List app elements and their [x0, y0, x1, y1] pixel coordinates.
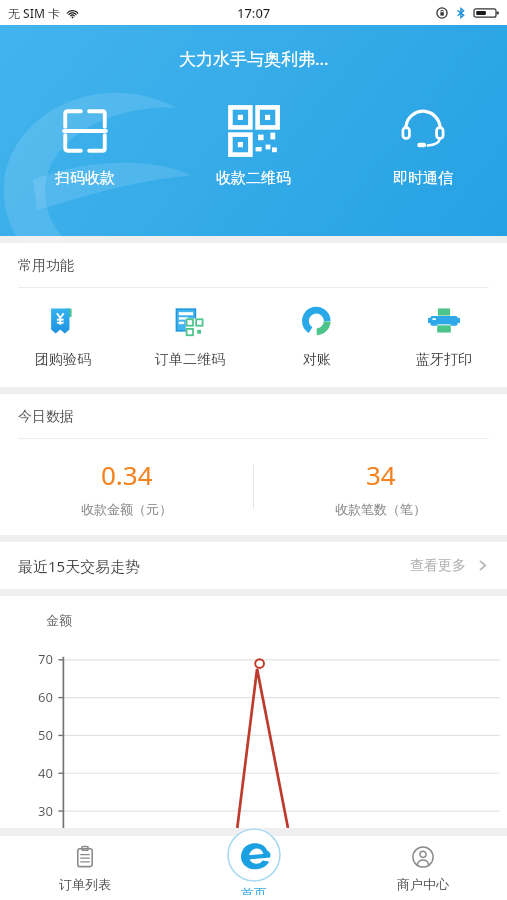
button[interactable]: 商户中心 — [338, 836, 507, 900]
staticText: 首页 — [241, 885, 267, 895]
staticText: 金额 — [46, 612, 72, 628]
button[interactable]: 团购验码 — [0, 304, 126, 369]
staticText: 团购验码 — [35, 351, 91, 369]
staticText: 对账 — [303, 351, 331, 369]
staticText: 收款金额（元） — [81, 501, 172, 517]
staticText: 商户中心 — [397, 876, 449, 892]
button[interactable]: 即时通信 — [338, 101, 507, 192]
staticText: 蓝牙打印 — [416, 351, 472, 369]
staticText: 订单列表 — [59, 876, 111, 892]
button[interactable]: 34 — [254, 457, 507, 517]
button[interactable]: 对账 — [253, 304, 380, 369]
staticText: 无 SIM 卡 — [8, 5, 61, 21]
button[interactable]: 订单二维码 — [126, 304, 253, 369]
button[interactable]: 0.34 — [0, 457, 253, 517]
staticText: 今日数据 — [18, 408, 74, 426]
button[interactable]: 订单列表 — [0, 836, 169, 900]
staticText: 订单二维码 — [155, 351, 225, 369]
staticText: 扫码收款 — [55, 169, 115, 188]
staticText: 17:07 — [237, 4, 271, 22]
staticText: 40 — [38, 764, 53, 782]
button[interactable]: 收款二维码 — [169, 101, 338, 192]
staticText: 大力水手与奥利弗... — [179, 47, 329, 70]
staticText: 最近15天交易走势 — [18, 556, 141, 576]
staticText: 34 — [366, 457, 396, 492]
staticText: 常用功能 — [18, 257, 74, 275]
staticText: 70 — [38, 650, 53, 668]
button[interactable]: 扫码收款 — [0, 101, 169, 192]
button[interactable]: 蓝牙打印 — [380, 304, 507, 369]
button[interactable]: 首页 — [199, 828, 309, 900]
button[interactable]: 最近15天交易走势 — [0, 542, 507, 589]
staticText: 30 — [38, 802, 53, 820]
staticText: 0.34 — [101, 457, 153, 492]
staticText: 即时通信 — [393, 169, 453, 188]
staticText: 收款二维码 — [216, 169, 291, 188]
staticText: 收款笔数（笔） — [335, 501, 426, 517]
staticText: 60 — [38, 688, 53, 706]
staticText: 50 — [38, 726, 53, 744]
other: View more — [476, 559, 489, 572]
staticText: 查看更多 — [410, 557, 466, 575]
